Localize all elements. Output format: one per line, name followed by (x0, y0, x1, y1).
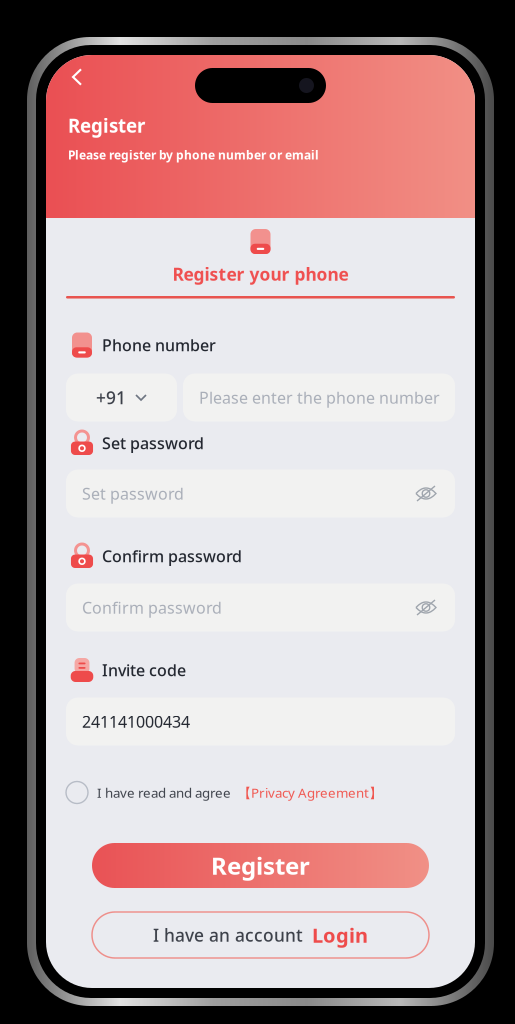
staticText: I have an account (153, 923, 303, 946)
staticText: Register your phone (172, 262, 348, 285)
staticText: Please enter the phone number (199, 387, 440, 408)
staticText: 241141000434 (82, 711, 190, 732)
button[interactable]: +91 (66, 373, 177, 421)
staticText: I have read and agree (97, 784, 231, 801)
staticText: Confirm password (102, 545, 242, 567)
button[interactable]: Set password (66, 469, 455, 517)
button[interactable]: I have an account (92, 912, 429, 958)
staticText: Register (68, 113, 145, 138)
staticText: +91 (96, 386, 126, 409)
staticText: Invite code (102, 659, 186, 681)
button[interactable]: Confirm password (66, 583, 455, 631)
button[interactable]: Please enter the phone number (183, 373, 455, 421)
staticText: Confirm password (82, 597, 222, 618)
staticText: 【Privacy Agreement】 (238, 784, 382, 801)
button[interactable]: I have read and agree (66, 781, 455, 803)
staticText: Set password (102, 432, 204, 454)
staticText: Set password (82, 483, 184, 504)
staticText: Please register by phone number or email (68, 147, 319, 163)
button[interactable]: 241141000434 (66, 697, 455, 745)
button[interactable]: Register (92, 843, 429, 888)
button[interactable]: Back (58, 60, 96, 94)
staticText: Login (312, 922, 368, 948)
staticText: Phone number (102, 334, 216, 356)
staticText: Register (211, 850, 310, 881)
